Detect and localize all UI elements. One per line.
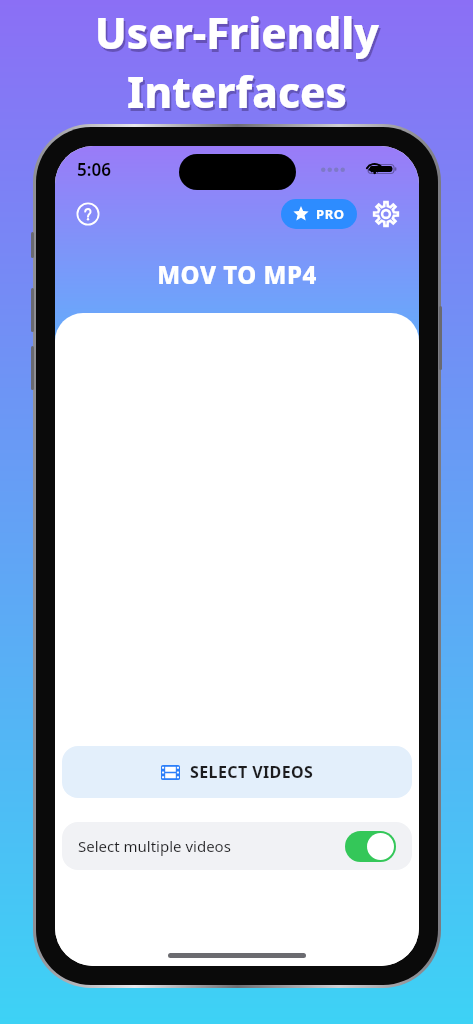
button[interactable]: Help: [71, 197, 105, 231]
button[interactable]: PRO: [281, 199, 357, 229]
staticText: User-Friendly: [95, 4, 379, 61]
staticText: SELECT VIDEOS: [190, 761, 314, 783]
staticText: PRO: [316, 205, 345, 223]
button[interactable]: Select multiple videos toggle: [345, 831, 396, 862]
staticText: Interfaces: [129, 66, 349, 123]
staticText: Interfaces: [127, 63, 347, 120]
button[interactable]: Settings: [369, 197, 403, 231]
staticText: User-Friendly: [97, 7, 381, 64]
staticText: MOV TO MP4: [55, 258, 419, 291]
button[interactable]: SELECT VIDEOS: [62, 746, 412, 798]
staticText: Select multiple videos: [78, 836, 231, 856]
button[interactable]: Select multiple videos: [62, 822, 412, 870]
staticText: 5:06: [77, 158, 111, 181]
